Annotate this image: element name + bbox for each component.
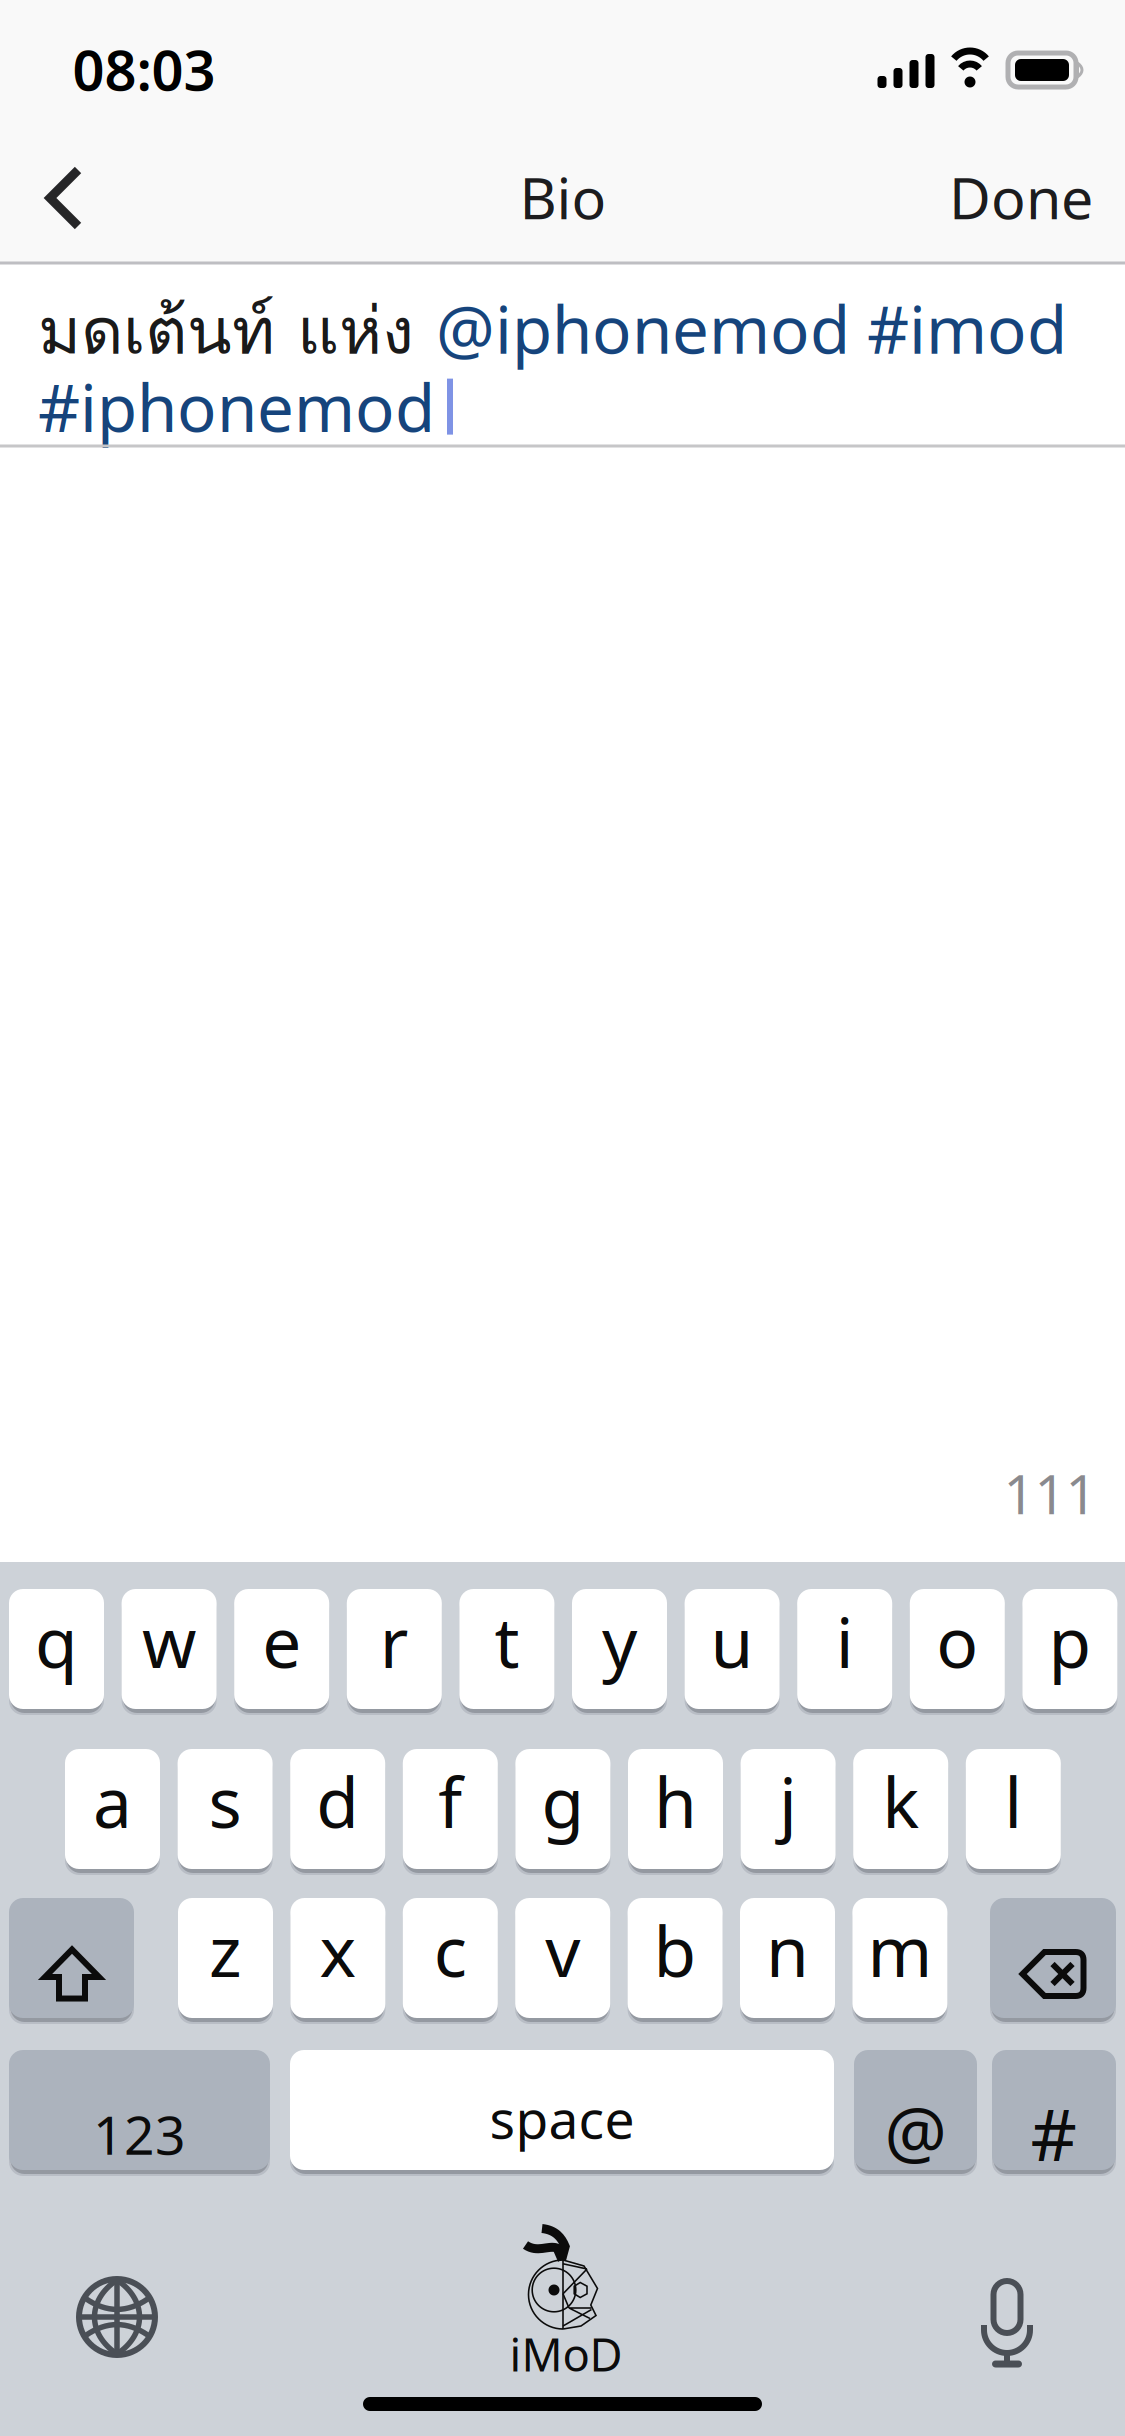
button[interactable] [9,1892,134,2024]
button[interactable]: t [459,1583,554,1715]
button[interactable]: e [234,1583,329,1715]
button[interactable]: r [347,1583,442,1715]
button[interactable]: y [572,1583,667,1715]
button[interactable]: Back [14,148,114,248]
button[interactable]: b [628,1892,723,2024]
staticText: q [35,1595,78,1687]
staticText: iMoD [509,2324,622,2384]
staticText: n [766,1904,809,1996]
button[interactable]: u [685,1583,780,1715]
staticText: t [494,1595,519,1687]
button[interactable]: v [515,1892,610,2024]
staticText: u [711,1595,754,1687]
staticText: @ [884,2085,946,2177]
staticText: l [1004,1755,1022,1847]
staticText: Done [949,159,1093,235]
button[interactable]: j [741,1743,836,1875]
button[interactable]: l [966,1743,1061,1875]
staticText: #iphonemod [38,363,435,450]
button[interactable]: k [853,1743,948,1875]
button[interactable]: c [403,1892,498,2024]
staticText: b [654,1904,697,1996]
staticText: a [93,1755,132,1847]
button[interactable]: o [910,1583,1005,1715]
button[interactable]: m [852,1892,947,2024]
button[interactable]: n [740,1892,835,2024]
button[interactable]: a [65,1743,160,1875]
button[interactable]: @ [854,2044,977,2176]
staticText: space [489,2083,634,2153]
button[interactable]: i [797,1583,892,1715]
button[interactable]: f [403,1743,498,1875]
button[interactable]: x [290,1892,385,2024]
staticText: 111 [1003,1457,1096,1529]
button[interactable] [990,1892,1116,2024]
staticText: x [319,1904,356,1996]
staticText: c [434,1904,467,1996]
staticText: @iphonemod #imod [436,285,1067,372]
button[interactable]: h [628,1743,723,1875]
button[interactable]: s [178,1743,273,1875]
button[interactable]: Dictation [952,2263,1062,2373]
staticText: w [142,1595,196,1687]
button[interactable]: g [515,1743,610,1875]
button[interactable]: Next keyboard [62,2262,172,2372]
staticText: 08:03 [72,32,215,106]
staticText: v [545,1904,580,1996]
button[interactable]: space [290,2044,834,2176]
button[interactable]: d [290,1743,385,1875]
staticText: j [779,1755,797,1847]
staticText: y [602,1595,637,1687]
staticText: s [209,1755,242,1847]
staticText: g [541,1755,584,1847]
button[interactable]: # [992,2044,1116,2176]
staticText: o [936,1595,978,1687]
staticText: z [209,1904,242,1996]
button[interactable]: p [1022,1583,1117,1715]
staticText: d [316,1755,359,1847]
staticText: k [882,1755,919,1847]
staticText: h [654,1755,697,1847]
staticText: r [380,1595,409,1687]
staticText: # [1030,2085,1077,2181]
button[interactable]: z [178,1892,273,2024]
staticText: Bio [519,159,606,235]
button[interactable]: Done [931,147,1111,247]
staticText: m [867,1904,932,1996]
button[interactable]: 123 [9,2044,270,2176]
staticText: มดเต้นท์ แห่ง [38,280,436,381]
staticText: 123 [93,2099,186,2169]
staticText: f [438,1755,462,1847]
staticText: p [1048,1595,1091,1687]
button[interactable]: q [9,1583,104,1715]
staticText: e [262,1595,301,1687]
button[interactable]: w [122,1583,217,1715]
staticText: i [836,1595,854,1687]
